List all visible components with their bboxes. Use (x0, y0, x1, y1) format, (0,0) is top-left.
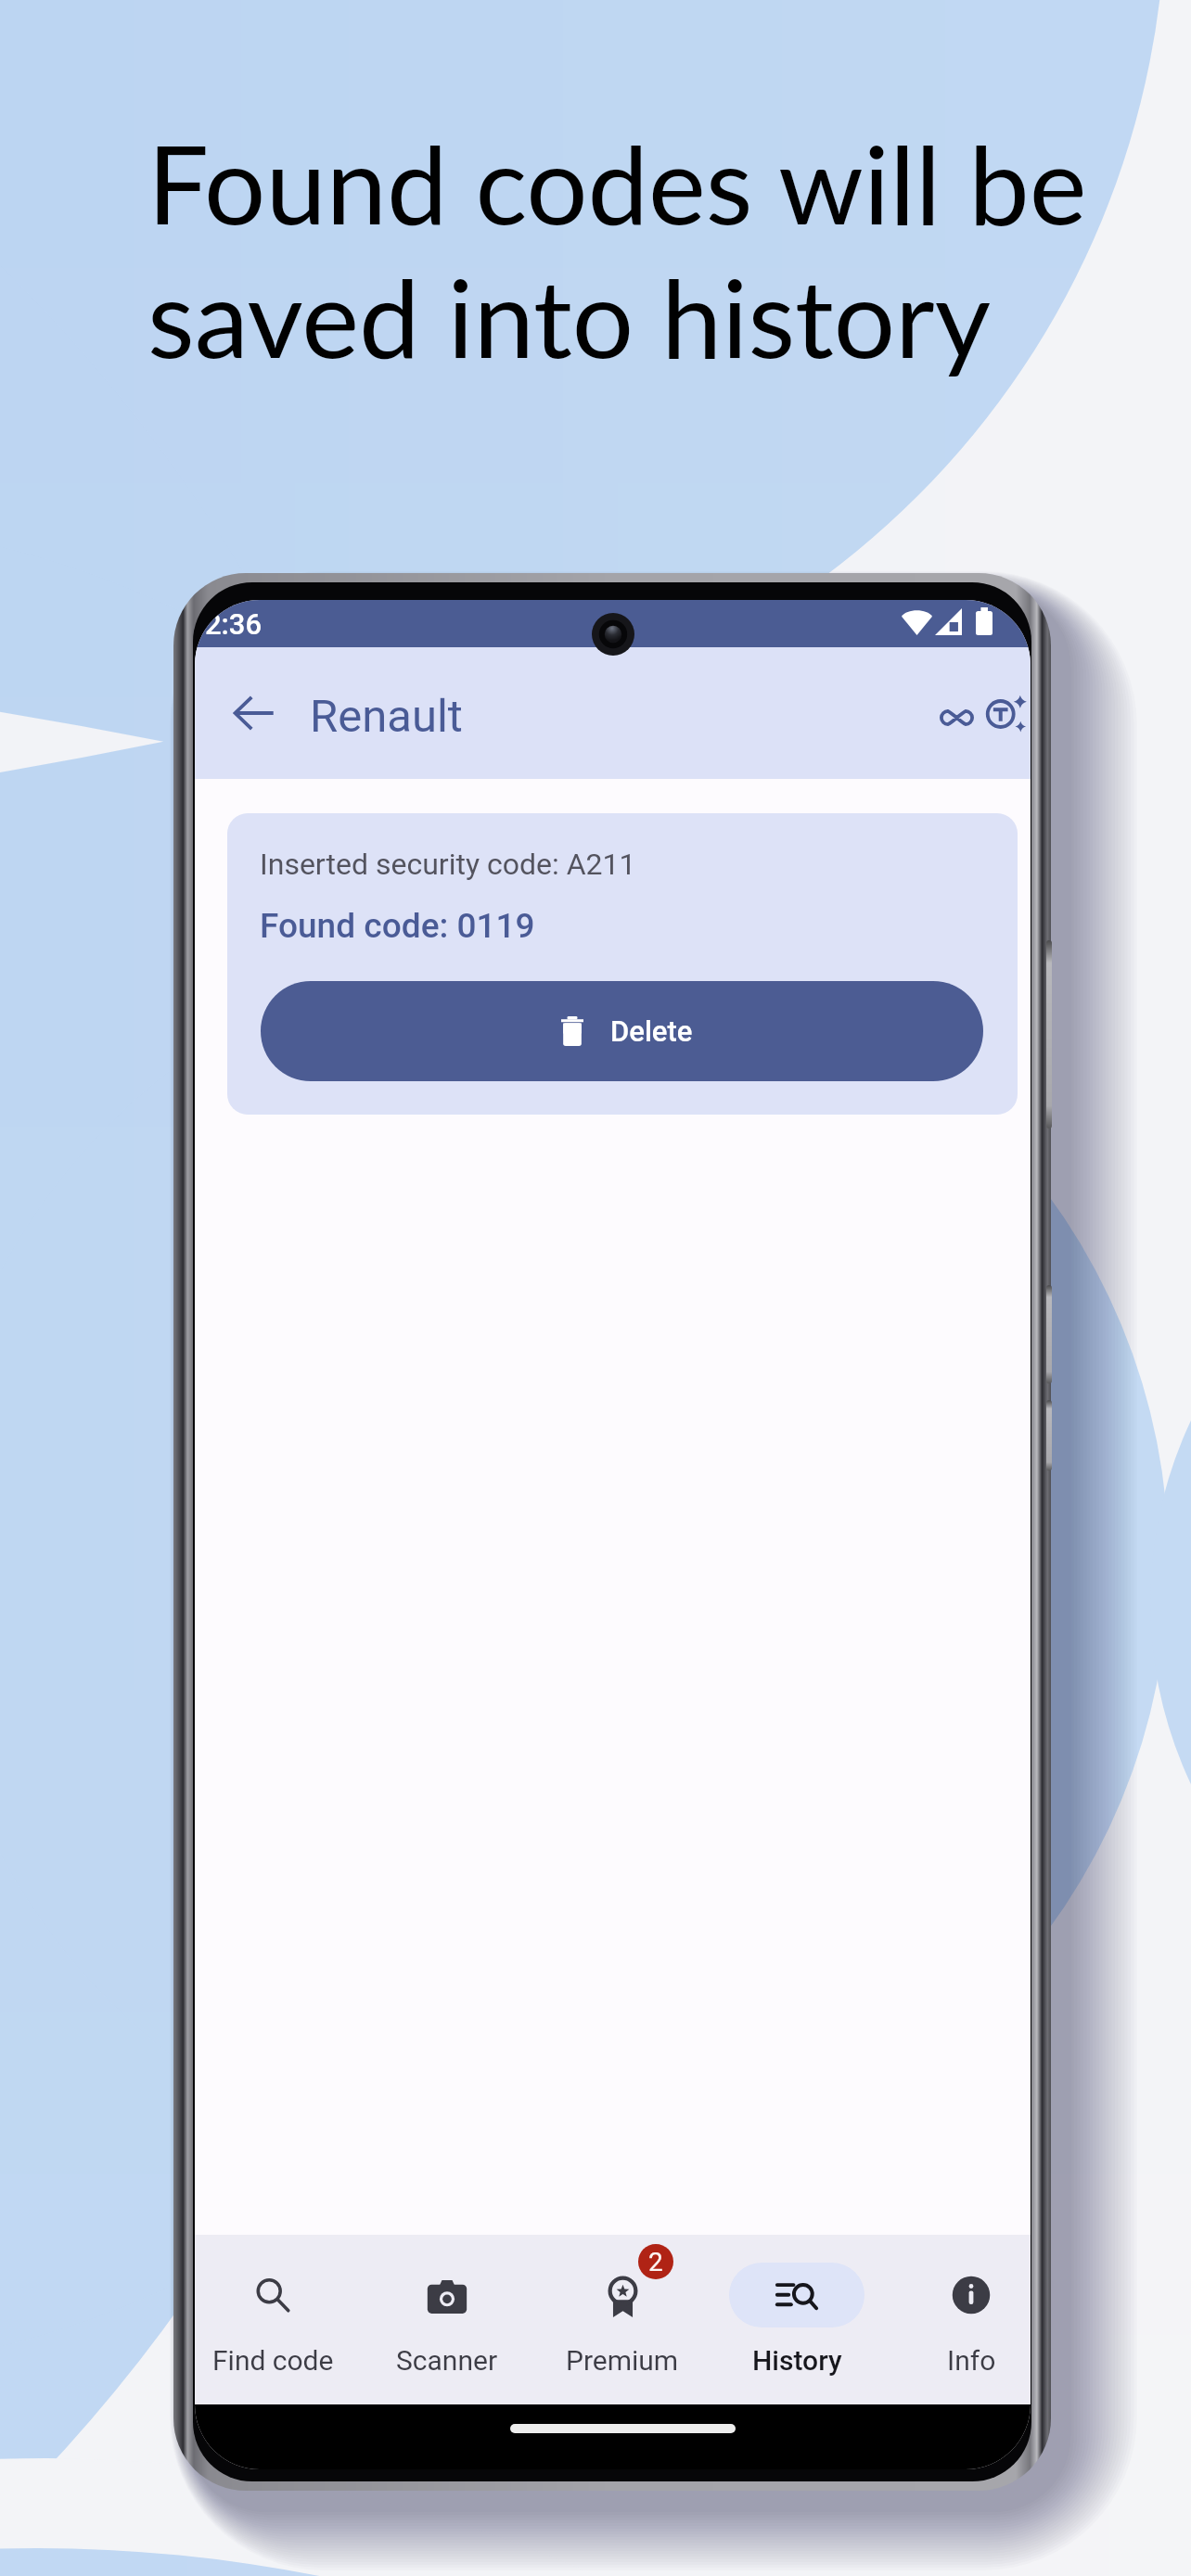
staticText: Inserted security code: A211 (260, 847, 636, 882)
staticText: Find code (212, 2344, 334, 2377)
staticText: Renault (310, 690, 463, 743)
button[interactable]: Find code (195, 2235, 360, 2404)
button[interactable]: Info (884, 2235, 1031, 2404)
staticText: 2 (648, 2247, 663, 2277)
staticText: Scanner (396, 2344, 498, 2377)
button[interactable]: History (710, 2235, 884, 2404)
staticText: 2:36 (205, 607, 263, 641)
staticText: Delete (610, 1014, 693, 1048)
button[interactable]: 2 (535, 2235, 710, 2404)
button[interactable]: Back (223, 682, 286, 745)
staticText: History (752, 2344, 842, 2377)
button[interactable]: Translate (977, 685, 1031, 743)
staticText: Info (947, 2344, 996, 2377)
staticText: Found code: 0119 (260, 906, 535, 946)
button[interactable]: Unlimited (928, 689, 985, 746)
button[interactable]: Delete (261, 981, 983, 1081)
staticText: Found codes will be saved into history (147, 118, 1087, 381)
button[interactable]: Scanner (360, 2235, 534, 2404)
staticText: Premium (566, 2344, 679, 2377)
